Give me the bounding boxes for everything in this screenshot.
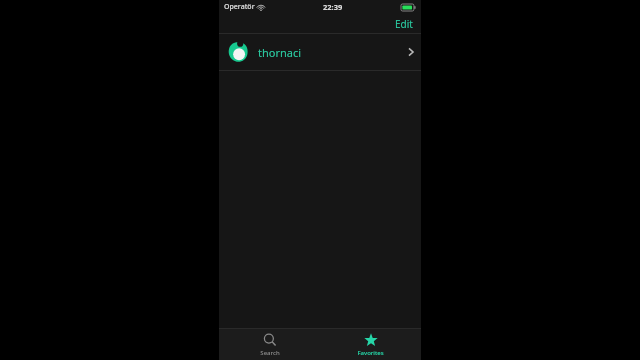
button[interactable]: Search [219, 329, 320, 360]
staticText: Operatör [224, 2, 255, 12]
staticText: 22:39 [323, 2, 343, 12]
button[interactable]: Edit [387, 14, 421, 34]
staticText: thornaci [258, 45, 302, 60]
button[interactable]: Favorites [320, 329, 421, 360]
staticText: Favorites [357, 349, 384, 357]
button[interactable]: thornaci [219, 34, 421, 70]
other: Open contact [407, 46, 415, 58]
staticText: Search [260, 349, 280, 357]
staticText: Edit [395, 17, 413, 31]
